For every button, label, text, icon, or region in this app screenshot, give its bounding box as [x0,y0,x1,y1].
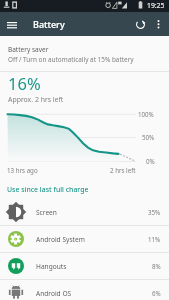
staticText: Screen [36,208,57,217]
staticText: 11% [148,235,161,243]
staticText: 35% [148,208,161,216]
button[interactable]: Use since last full charge [0,182,169,198]
staticText: 6% [152,289,161,297]
staticText: 16% [8,72,41,94]
staticText: Use since last full charge [7,185,89,194]
staticText: Android OS [36,289,72,298]
button[interactable]: Android System [0,226,169,252]
button[interactable]: Battery saver [0,36,169,72]
button[interactable]: Open navigation menu [3,16,21,34]
staticText: 13 hrs ago [7,166,38,174]
button[interactable]: Hangouts [0,253,169,279]
staticText: 8% [152,262,161,270]
button[interactable]: Screen [0,199,169,225]
staticText: Approx. 2 hrs left [8,95,64,104]
staticText: 0% [146,157,155,165]
button[interactable]: Refresh [131,15,149,33]
staticText: Hangouts [36,262,67,271]
staticText: 2 hrs left [110,166,136,174]
staticText: Battery saver [8,45,49,54]
staticText: 19:25 [147,1,165,10]
staticText: 100% [138,110,154,118]
staticText: Android System [36,235,85,244]
staticText: Battery [33,18,65,30]
staticText: 50% [142,133,155,141]
button[interactable]: More options [149,15,167,33]
button[interactable]: Android OS [0,280,169,300]
staticText: Off / Turn on automatically at 15% batte… [8,55,134,64]
